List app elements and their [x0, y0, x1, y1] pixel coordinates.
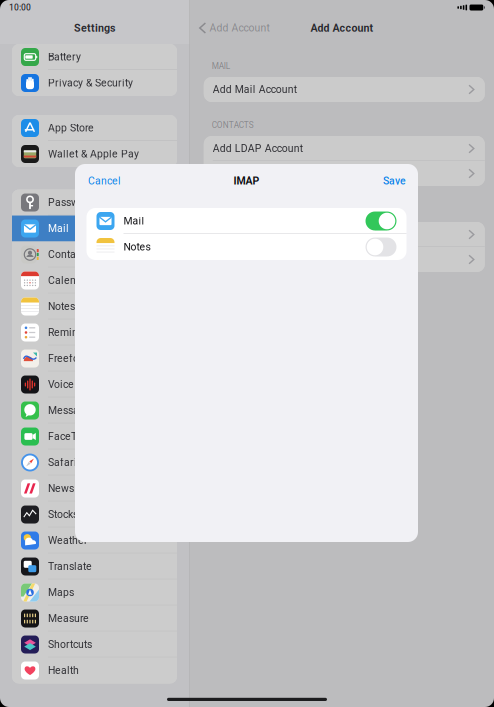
- button[interactable]: Health: [12, 657, 177, 683]
- staticText: Add CalDAV Account: [213, 253, 312, 266]
- button[interactable]: Add CardDAV Account: [204, 161, 485, 186]
- staticText: Stocks: [48, 508, 78, 521]
- staticText: Freeform: [48, 352, 92, 365]
- button[interactable]: News: [12, 475, 177, 501]
- staticText: Add Mail Account: [213, 83, 297, 96]
- button[interactable]: Voice Memos: [12, 371, 177, 397]
- button[interactable]: Contacts: [12, 241, 177, 267]
- button[interactable]: Maps: [12, 579, 177, 605]
- button[interactable]: Weather: [12, 527, 177, 553]
- staticText: Voice Memos: [48, 378, 112, 391]
- button[interactable]: Wallet & Apple Pay: [12, 141, 177, 167]
- button[interactable]: Add Mail Account: [204, 77, 485, 102]
- staticText: FaceTime: [48, 430, 95, 443]
- staticText: Cancel: [88, 175, 121, 187]
- staticText: Mail: [123, 215, 144, 227]
- button[interactable]: App Store: [12, 115, 177, 141]
- staticText: Notes: [48, 300, 75, 313]
- staticText: Battery: [48, 51, 81, 63]
- staticText: Reminders: [48, 326, 99, 339]
- button[interactable]: Add Subscribed Calendar: [204, 222, 485, 247]
- staticText: Translate: [48, 560, 92, 573]
- staticText: CALENDARS: [212, 206, 257, 216]
- staticText: CONTACTS: [212, 120, 254, 130]
- button[interactable]: Stocks: [12, 501, 177, 527]
- staticText: Health: [48, 664, 79, 677]
- button[interactable]: Privacy & Security: [12, 70, 177, 96]
- staticText: Messages: [48, 404, 96, 417]
- staticText: Add Account: [310, 22, 373, 34]
- button[interactable]: Add CalDAV Account: [204, 247, 485, 272]
- button[interactable]: Notes: [86, 234, 406, 260]
- button[interactable]: Freeform: [12, 345, 177, 371]
- staticText: MAIL: [212, 61, 230, 71]
- staticText: App Store: [48, 122, 94, 134]
- staticText: 10:00: [9, 2, 31, 12]
- staticText: Contacts: [48, 248, 89, 261]
- button[interactable]: Battery: [12, 44, 177, 70]
- staticText: Maps: [48, 586, 74, 599]
- button[interactable]: Passwords: [12, 189, 177, 215]
- staticText: Mail: [48, 222, 69, 235]
- button[interactable]: Translate: [12, 553, 177, 579]
- staticText: News: [48, 482, 74, 495]
- staticText: Add Subscribed Calendar: [213, 228, 335, 241]
- staticText: Wallet & Apple Pay: [48, 148, 139, 160]
- button[interactable]: Shortcuts: [12, 631, 177, 657]
- staticText: Add CardDAV Account: [213, 167, 318, 180]
- button[interactable]: Messages: [12, 397, 177, 423]
- button[interactable]: Calendar: [12, 267, 177, 293]
- button[interactable]: Notes: [12, 293, 177, 319]
- staticText: Add Account: [209, 22, 269, 34]
- staticText: Add LDAP Account: [213, 142, 303, 155]
- button[interactable]: Save: [371, 170, 418, 192]
- button[interactable]: Mail: [12, 215, 177, 241]
- staticText: Passwords: [48, 196, 99, 209]
- staticText: IMAP: [233, 175, 259, 187]
- staticText: Calendar: [48, 274, 92, 287]
- staticText: Safari: [48, 456, 77, 469]
- button[interactable]: Mail: [86, 208, 406, 234]
- button[interactable]: Safari: [12, 449, 177, 475]
- staticText: Weather: [48, 534, 88, 547]
- button[interactable]: Reminders: [12, 319, 177, 345]
- staticText: Save: [383, 175, 406, 187]
- staticText: Privacy & Security: [48, 77, 133, 89]
- button[interactable]: Add LDAP Account: [204, 136, 485, 161]
- button[interactable]: Measure: [12, 605, 177, 631]
- button[interactable]: FaceTime: [12, 423, 177, 449]
- button[interactable]: Add Account: [190, 15, 277, 41]
- staticText: Settings: [74, 22, 115, 34]
- staticText: Shortcuts: [48, 638, 92, 651]
- staticText: Measure: [48, 612, 89, 625]
- staticText: Notes: [123, 241, 150, 253]
- button[interactable]: Cancel: [75, 170, 133, 192]
